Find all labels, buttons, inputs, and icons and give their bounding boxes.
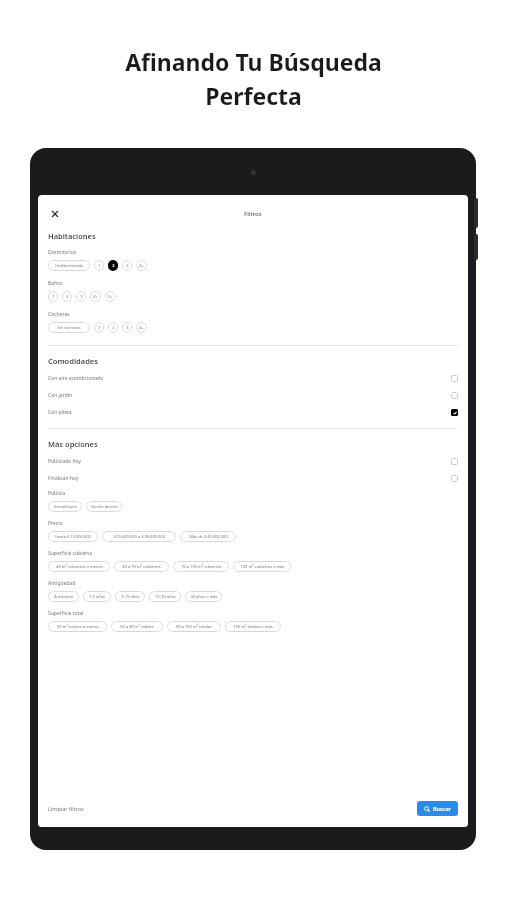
staticText: Más opciones xyxy=(48,439,98,449)
staticText: 50 m² totales o menos xyxy=(57,624,99,629)
staticText: 80 a 150 m² totales xyxy=(176,624,212,629)
staticText: Filtros xyxy=(244,210,262,218)
button[interactable]: 3 xyxy=(122,322,132,333)
staticText: Hasta $ 15.000.000 xyxy=(55,534,91,539)
button[interactable]: Con aire acondicionado xyxy=(48,375,458,382)
staticText: 1 xyxy=(98,325,101,330)
button[interactable]: Indeterminado xyxy=(48,260,90,271)
button[interactable]: Con jardín xyxy=(48,392,458,399)
button[interactable]: 40 m² cubiertos o menos xyxy=(48,561,110,572)
button[interactable]: 3 xyxy=(122,260,132,271)
button[interactable]: 1 xyxy=(94,260,104,271)
button[interactable]: 1 xyxy=(48,291,58,302)
button[interactable]: 1 xyxy=(94,322,104,333)
button[interactable]: 4+ xyxy=(136,322,147,333)
staticText: Buscar xyxy=(433,805,451,812)
staticText: 4+ xyxy=(139,325,144,330)
button[interactable]: 80 a 150 m² totales xyxy=(167,621,221,632)
staticText: Precio xyxy=(48,520,63,527)
button[interactable]: 5-15 años xyxy=(115,591,145,602)
staticText: 40 m² cubiertos o menos xyxy=(56,564,103,569)
staticText: Baños xyxy=(48,280,63,287)
staticText: Superficie total xyxy=(48,610,84,617)
staticText: Inmobiliaria xyxy=(54,504,77,509)
button[interactable]: Limpiar filtros xyxy=(48,805,84,812)
button[interactable]: Buscar xyxy=(417,801,458,816)
button[interactable]: Publicado hoy xyxy=(48,458,458,465)
button[interactable]: Hasta $ 15.000.000 xyxy=(48,531,98,542)
staticText: Dueño directo xyxy=(91,504,118,509)
staticText: 5-15 años xyxy=(121,594,140,599)
button[interactable]: 50 a 80 m² totales xyxy=(111,621,163,632)
button[interactable]: Finalizan hoy xyxy=(48,475,458,482)
staticText: Finalizan hoy xyxy=(48,475,79,482)
staticText: 3 xyxy=(80,294,83,299)
staticText: 100 m² cubiertos o más xyxy=(240,564,285,569)
staticText: 2 xyxy=(112,263,115,268)
staticText: Con jardín xyxy=(48,392,73,399)
staticText: Publica xyxy=(48,490,65,497)
button[interactable]: Más de $ 40.000.000 xyxy=(180,531,236,542)
button[interactable]: 3 xyxy=(76,291,86,302)
button[interactable]: 15-30 años xyxy=(149,591,181,602)
button[interactable]: 2 xyxy=(62,291,72,302)
staticText: Cocheras xyxy=(48,311,70,318)
staticText: Con aire acondicionado xyxy=(48,375,104,382)
button[interactable]: Dueño directo xyxy=(86,501,122,512)
staticText: Publicado hoy xyxy=(48,458,81,465)
staticText: 15-30 años xyxy=(155,594,176,599)
button[interactable]: 70 a 100 m² cubiertos xyxy=(173,561,229,572)
staticText: Habitaciones xyxy=(48,231,96,241)
staticText: 40 a 70 m² cubiertos xyxy=(122,564,161,569)
button[interactable]: 150 m² totales o más xyxy=(225,621,281,632)
staticText: Indeterminado xyxy=(55,263,84,268)
staticText: 3 xyxy=(126,325,129,330)
button[interactable]: 1-5 años xyxy=(83,591,111,602)
staticText: 4+ xyxy=(93,294,98,299)
staticText: Con pileta xyxy=(48,409,72,416)
staticText: Afinando Tu Búsqueda xyxy=(125,46,382,77)
staticText: Comodidades xyxy=(48,356,98,366)
staticText: $15.000.000 a $ 40.000.000 xyxy=(114,534,165,539)
button[interactable]: Con pileta xyxy=(48,409,458,416)
staticText: 2 xyxy=(112,325,115,330)
button[interactable]: 40 a 70 m² cubiertos xyxy=(114,561,169,572)
staticText: 5+ xyxy=(108,294,113,299)
button[interactable]: A estrenar xyxy=(48,591,79,602)
button[interactable]: 100 m² cubiertos o más xyxy=(233,561,291,572)
staticText: 1 xyxy=(52,294,55,299)
staticText: A estrenar xyxy=(54,594,74,599)
staticText: Más de $ 40.000.000 xyxy=(189,534,228,539)
staticText: Sin cocheras xyxy=(57,325,81,330)
button[interactable]: Cerrar xyxy=(48,207,62,221)
button[interactable]: Inmobiliaria xyxy=(48,501,82,512)
staticText: 50 a 80 m² totales xyxy=(120,624,154,629)
staticText: Perfecta xyxy=(205,80,302,111)
staticText: Antigüedad xyxy=(48,580,76,587)
staticText: 150 m² totales o más xyxy=(233,624,273,629)
staticText: 70 a 100 m² cubiertos xyxy=(181,564,222,569)
staticText: 1 xyxy=(98,263,101,268)
button[interactable]: 30 años o más xyxy=(185,591,222,602)
button[interactable]: 2 xyxy=(108,260,118,271)
button[interactable]: 4+ xyxy=(90,291,101,302)
button[interactable]: 2 xyxy=(108,322,118,333)
staticText: 2 xyxy=(66,294,69,299)
staticText: Dormitorios xyxy=(48,249,77,256)
button[interactable]: Sin cocheras xyxy=(48,322,90,333)
staticText: Superficie cubierta xyxy=(48,550,92,557)
button[interactable]: $15.000.000 a $ 40.000.000 xyxy=(102,531,176,542)
staticText: 30 años o más xyxy=(190,594,218,599)
button[interactable]: 4+ xyxy=(136,260,147,271)
button[interactable]: 5+ xyxy=(105,291,116,302)
staticText: 1-5 años xyxy=(89,594,105,599)
button[interactable]: 50 m² totales o menos xyxy=(48,621,107,632)
staticText: 4+ xyxy=(139,263,144,268)
staticText: 3 xyxy=(126,263,129,268)
